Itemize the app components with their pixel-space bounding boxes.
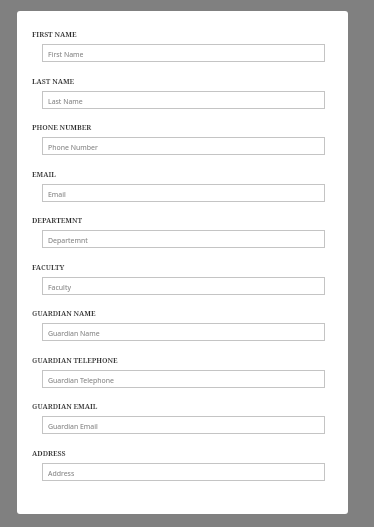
button[interactable]: GUARDIAN EMAIL xyxy=(42,416,325,434)
staticText: Last Name xyxy=(48,97,83,106)
button[interactable]: GUARDIAN TELEPHONE xyxy=(42,370,325,388)
button[interactable]: GUARDIAN NAME xyxy=(42,323,325,341)
staticText: Phone Number xyxy=(48,143,98,152)
staticText: LAST NAME xyxy=(32,77,75,87)
staticText: ADDRESS xyxy=(32,449,66,459)
button[interactable]: LAST NAME xyxy=(42,91,325,109)
staticText: Guardian Name xyxy=(48,329,100,338)
staticText: Guardian Email xyxy=(48,422,98,431)
staticText: FIRST NAME xyxy=(32,30,77,40)
staticText: GUARDIAN NAME xyxy=(32,309,96,319)
button[interactable]: ADDRESS xyxy=(42,463,325,481)
staticText: FACULTY xyxy=(32,263,65,273)
staticText: Address xyxy=(48,469,75,478)
staticText: Guardian Telephone xyxy=(48,376,114,385)
button[interactable]: FIRST NAME xyxy=(42,44,325,62)
staticText: DEPARTEMNT xyxy=(32,216,83,226)
staticText: PHONE NUMBER xyxy=(32,123,92,133)
button[interactable]: DEPARTEMNT xyxy=(42,230,325,248)
staticText: GUARDIAN TELEPHONE xyxy=(32,356,118,366)
button[interactable]: EMAIL xyxy=(42,184,325,202)
staticText: First Name xyxy=(48,50,84,59)
button[interactable]: PHONE NUMBER xyxy=(42,137,325,155)
staticText: GUARDIAN EMAIL xyxy=(32,402,98,412)
staticText: Departemnt xyxy=(48,236,88,245)
staticText: EMAIL xyxy=(32,170,56,180)
staticText: Faculty xyxy=(48,283,71,292)
staticText: Email xyxy=(48,190,66,199)
button[interactable]: FACULTY xyxy=(42,277,325,295)
